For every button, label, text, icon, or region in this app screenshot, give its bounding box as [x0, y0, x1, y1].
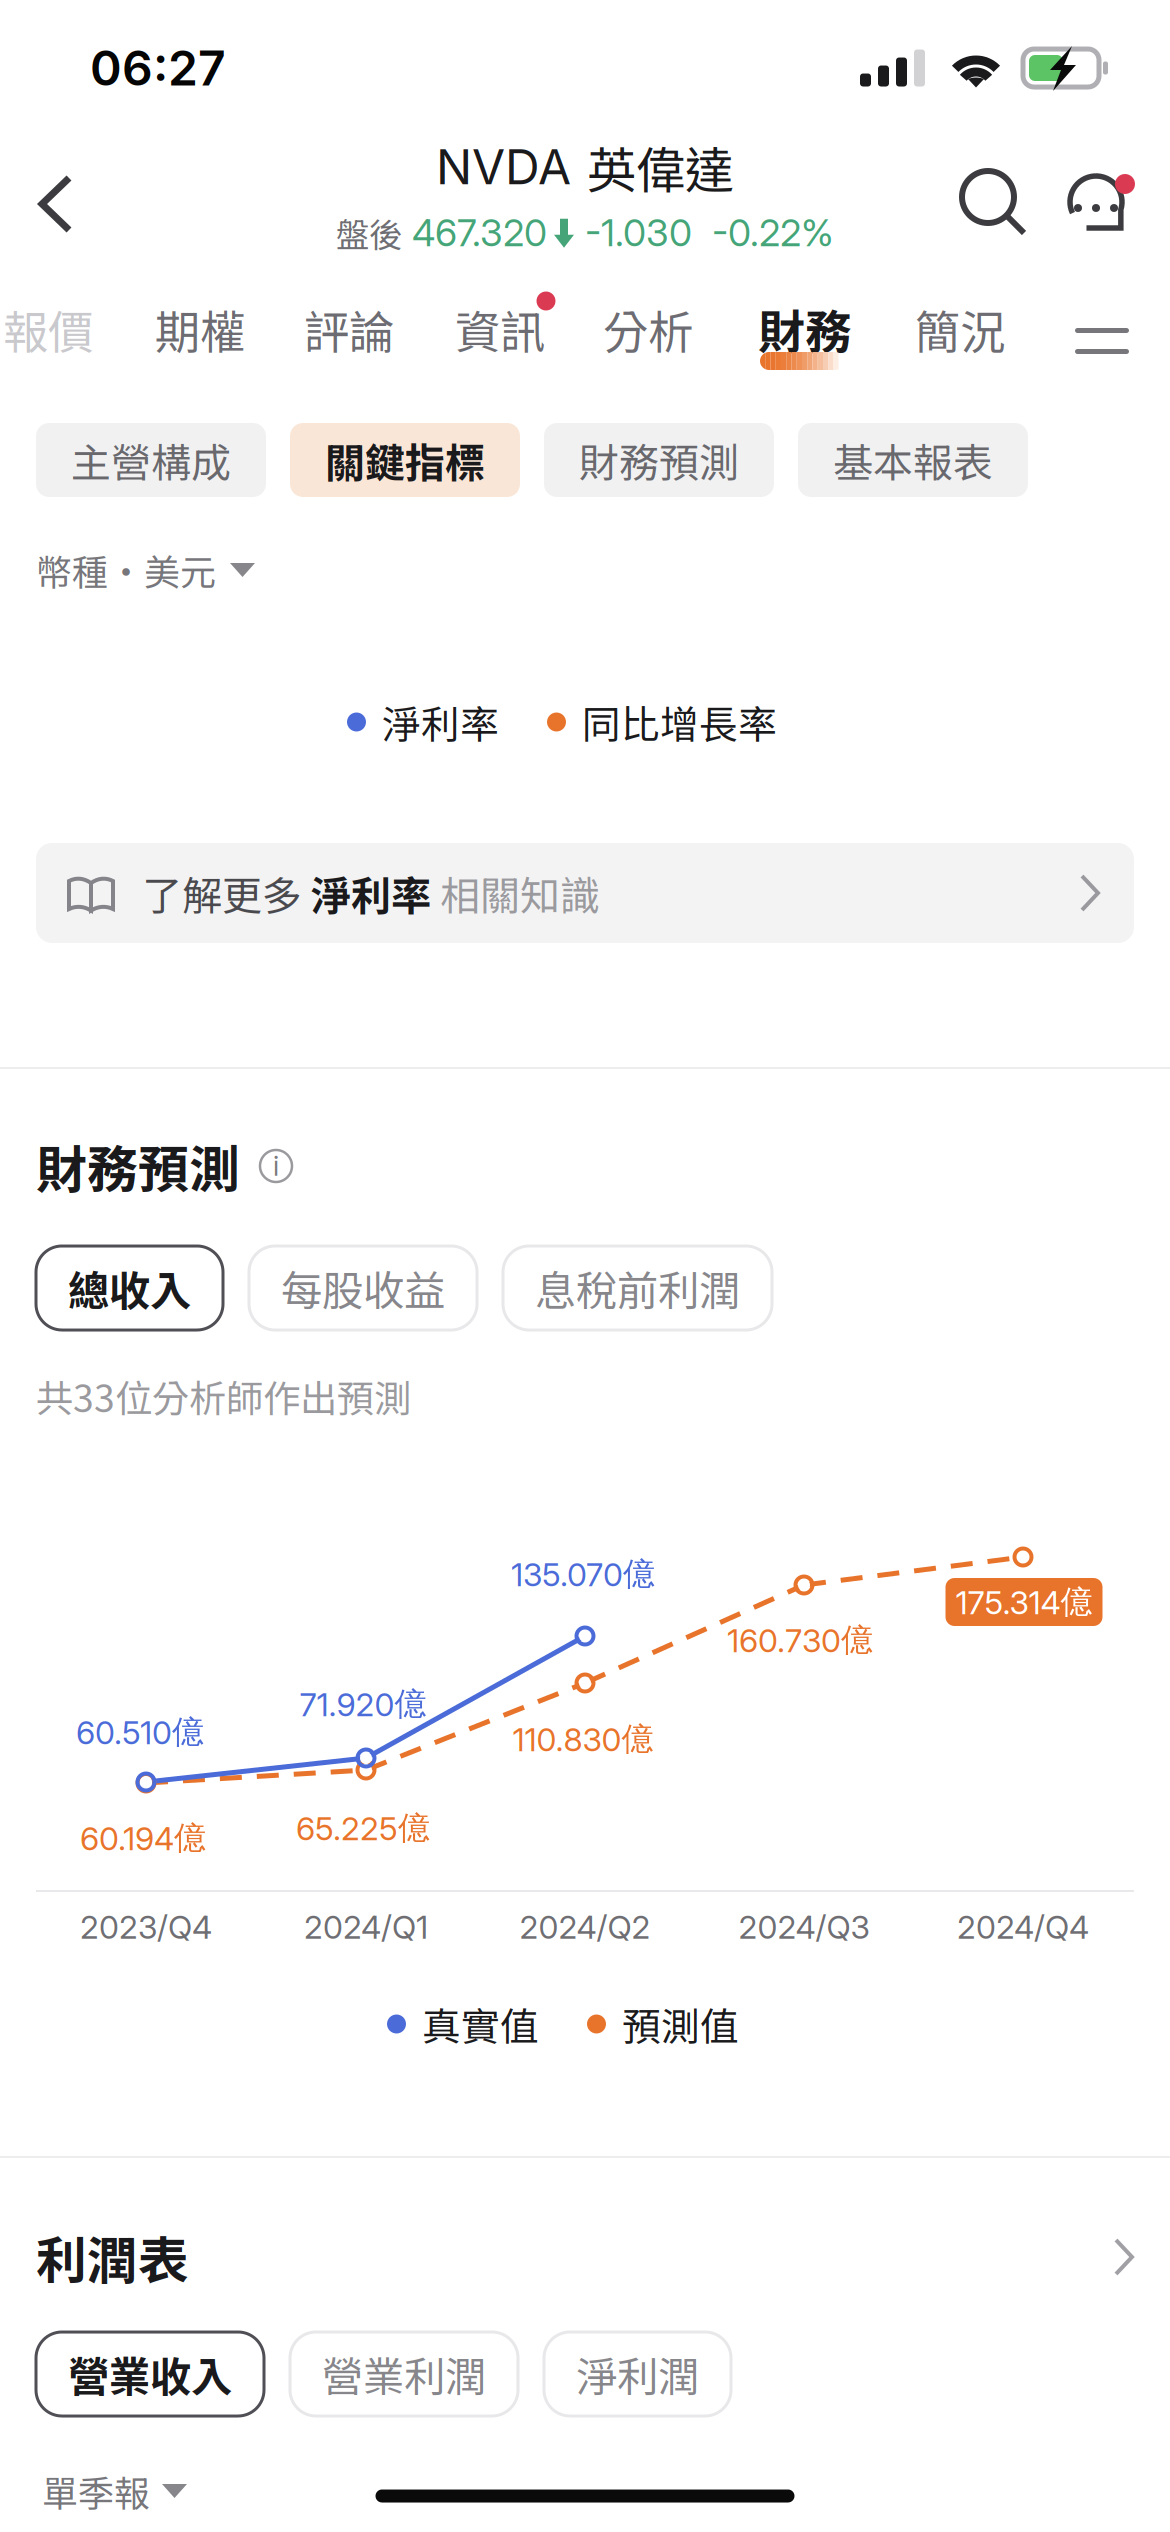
- button[interactable]: 資訊: [440, 295, 560, 391]
- staticText: 了解更多: [142, 864, 311, 922]
- button[interactable]: 基本報表: [798, 423, 1028, 497]
- staticText: 淨利潤: [576, 2344, 699, 2404]
- button[interactable]: 關鍵指標: [290, 423, 520, 497]
- staticText: 同比增長率: [582, 694, 777, 750]
- button[interactable]: More options: [1053, 154, 1153, 254]
- staticText: 利潤表: [36, 2220, 189, 2294]
- staticText: 息稅前利潤: [535, 1258, 740, 1318]
- button[interactable]: Search: [945, 154, 1045, 254]
- staticText: 2023/Q4: [80, 1908, 212, 1946]
- staticText: 110.830億: [512, 1719, 653, 1759]
- staticText: 預測值: [622, 1996, 739, 2052]
- button[interactable]: 期權: [140, 295, 260, 391]
- staticText: 淨利率: [311, 864, 431, 922]
- button[interactable]: 營業收入: [36, 2332, 264, 2416]
- staticText: 簡況: [915, 296, 1005, 362]
- staticText: 報價: [3, 296, 93, 362]
- button[interactable]: 營業利潤: [290, 2332, 518, 2416]
- staticText: NVDA: [436, 138, 571, 196]
- staticText: 71.920億: [299, 1684, 426, 1724]
- staticText: 營業利潤: [322, 2344, 486, 2404]
- button[interactable]: 淨利潤: [544, 2332, 731, 2416]
- staticText: 2024/Q4: [957, 1908, 1089, 1946]
- staticText: 關鍵指標: [325, 431, 485, 489]
- button[interactable]: 財務: [745, 295, 865, 391]
- staticText: 2024/Q3: [738, 1908, 869, 1946]
- staticText: 65.225億: [296, 1808, 430, 1848]
- staticText: 相關知識: [431, 864, 600, 922]
- staticText: 135.070億: [511, 1554, 655, 1594]
- staticText: 175.314億: [955, 1582, 1092, 1622]
- staticText: 單季報: [42, 2465, 150, 2517]
- staticText: 2024/Q1: [304, 1908, 428, 1946]
- staticText: i: [273, 1150, 279, 1182]
- staticText: 基本報表: [833, 431, 993, 489]
- staticText: 英偉達: [587, 131, 734, 202]
- staticText: -1.030: [575, 210, 692, 255]
- staticText: 2024/Q2: [519, 1908, 650, 1946]
- staticText: 分析: [603, 296, 693, 362]
- button[interactable]: 總收入: [36, 1246, 223, 1330]
- button[interactable]: 評論: [289, 295, 409, 391]
- staticText: -0.22%: [692, 210, 834, 255]
- staticText: 60.510億: [76, 1712, 204, 1752]
- staticText: 06:27: [90, 39, 226, 97]
- staticText: 總收入: [68, 1258, 191, 1318]
- staticText: 財務預測: [579, 431, 739, 489]
- staticText: 財務: [758, 295, 852, 363]
- button[interactable]: 幣種·美元: [0, 534, 360, 606]
- button[interactable]: 息稅前利潤: [503, 1246, 772, 1330]
- staticText: 營業收入: [68, 2344, 232, 2404]
- button[interactable]: 每股收益: [249, 1246, 477, 1330]
- staticText: 60.194億: [80, 1818, 206, 1858]
- staticText: 467.320: [402, 210, 547, 255]
- button[interactable]: 單季報: [0, 2459, 320, 2523]
- staticText: 財務預測: [36, 1129, 240, 1203]
- button[interactable]: 財務預測: [544, 423, 774, 497]
- staticText: 資訊: [455, 296, 545, 362]
- staticText: 每股收益: [281, 1258, 445, 1318]
- button[interactable]: 簡況: [900, 295, 1020, 391]
- button[interactable]: 分析: [588, 295, 708, 391]
- button[interactable]: 報價: [0, 295, 108, 391]
- staticText: 共33位分析師作出預測: [36, 1369, 411, 1423]
- button[interactable]: 了解更多: [36, 843, 1134, 943]
- button[interactable]: 利潤表: [0, 2222, 1170, 2292]
- button[interactable]: Menu: [1057, 296, 1147, 386]
- staticText: 淨利率: [382, 694, 499, 750]
- staticText: 評論: [304, 296, 394, 362]
- button[interactable]: Back: [1, 148, 111, 260]
- button[interactable]: 主營構成: [36, 423, 266, 497]
- staticText: 真實值: [422, 1996, 539, 2052]
- staticText: 幣種·美元: [36, 544, 216, 596]
- staticText: 盤後: [336, 209, 402, 257]
- staticText: 期權: [155, 296, 245, 362]
- staticText: 主營構成: [71, 431, 231, 489]
- staticText: 160.730億: [727, 1620, 873, 1660]
